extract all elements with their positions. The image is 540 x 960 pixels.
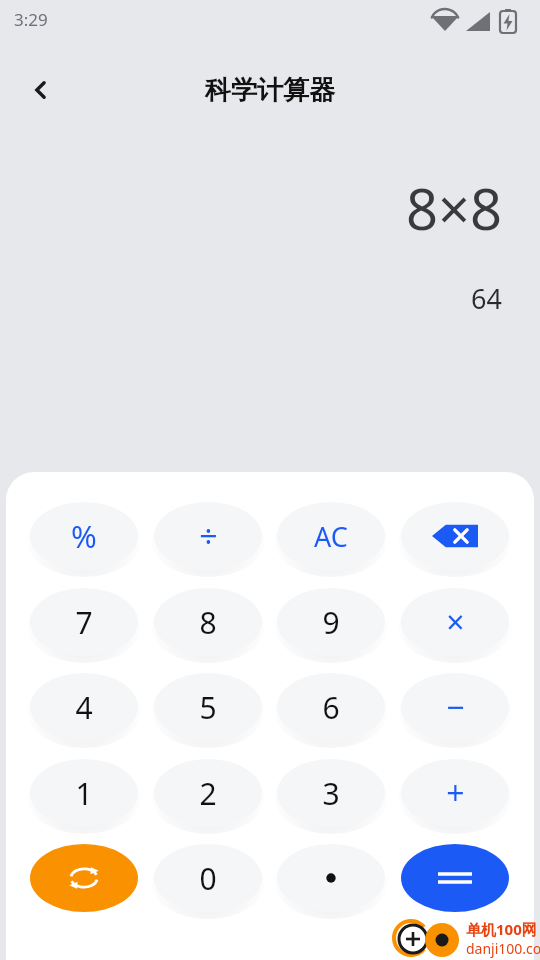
button[interactable]: 6: [277, 673, 385, 741]
button[interactable]: 3: [277, 759, 385, 827]
button[interactable]: 4: [30, 673, 138, 741]
staticText: 8: [199, 602, 217, 643]
button[interactable]: 9: [277, 588, 385, 656]
button[interactable]: 0: [154, 844, 262, 912]
button[interactable]: +: [401, 759, 509, 827]
button[interactable]: Back: [18, 66, 64, 114]
staticText: 6: [322, 687, 340, 728]
staticText: −: [446, 685, 465, 729]
button[interactable]: Backspace: [401, 502, 509, 570]
staticText: danji100.com: [466, 939, 540, 958]
button[interactable]: [277, 844, 385, 912]
button[interactable]: [401, 844, 509, 912]
button[interactable]: ÷: [154, 502, 262, 570]
button[interactable]: ×: [401, 588, 509, 656]
button[interactable]: AC: [277, 502, 385, 570]
button[interactable]: 1: [30, 759, 138, 827]
staticText: AC: [314, 518, 348, 555]
button[interactable]: %: [30, 502, 138, 570]
staticText: %: [71, 515, 97, 557]
staticText: 8×8: [405, 170, 502, 246]
staticText: ÷: [199, 514, 218, 558]
staticText: 3: [322, 773, 340, 814]
staticText: 0: [199, 858, 217, 899]
button[interactable]: 8: [154, 588, 262, 656]
button[interactable]: 5: [154, 673, 262, 741]
button[interactable]: Convert: [30, 844, 138, 912]
staticText: 4: [75, 687, 93, 728]
staticText: 2: [199, 773, 217, 814]
staticText: 9: [322, 602, 340, 643]
staticText: ×: [446, 600, 465, 644]
staticText: 科学计算器: [0, 74, 540, 107]
staticText: 单机100网: [466, 919, 537, 939]
button[interactable]: −: [401, 673, 509, 741]
staticText: 5: [199, 687, 217, 728]
staticText: 3:29: [14, 8, 48, 31]
staticText: +: [446, 771, 465, 815]
staticText: 1: [75, 773, 93, 814]
staticText: 7: [75, 602, 93, 643]
button[interactable]: 2: [154, 759, 262, 827]
staticText: 64: [471, 280, 502, 317]
button[interactable]: 7: [30, 588, 138, 656]
